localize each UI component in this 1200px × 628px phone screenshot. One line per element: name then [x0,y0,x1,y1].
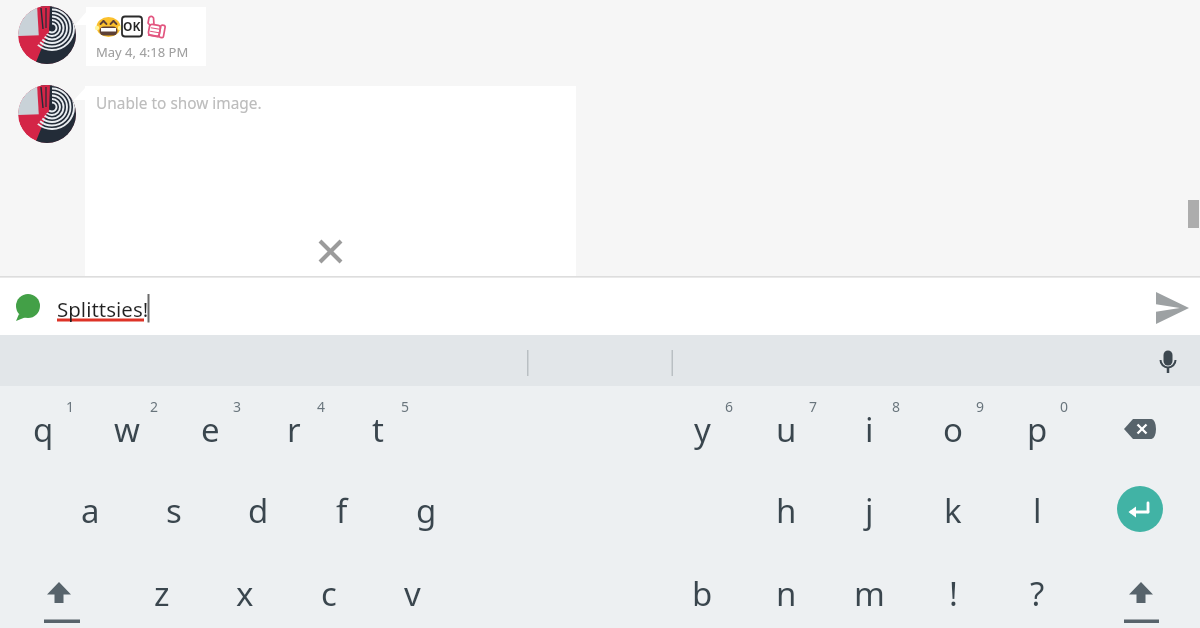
staticText: n [776,571,797,616]
button[interactable] [310,231,351,272]
staticText: b [692,571,713,616]
staticText: 7 [809,397,818,416]
button[interactable]: q [1,390,85,468]
button[interactable] [17,554,101,628]
staticText: ? [1030,571,1045,616]
staticText: y [694,407,711,452]
staticText: l [1033,488,1042,533]
button[interactable] [1146,282,1198,332]
button[interactable]: i [827,390,911,468]
button[interactable]: z [120,554,204,628]
button[interactable] [85,86,576,276]
staticText: f [336,488,348,533]
button[interactable]: ? [995,554,1079,628]
staticText: 3 [233,397,242,416]
staticText: m [854,571,885,616]
button[interactable] [1100,390,1184,468]
staticText: 0 [1060,397,1069,416]
staticText: ! [949,571,958,616]
button[interactable]: t [336,390,420,468]
staticText: v [404,571,421,616]
staticText: i [865,407,874,452]
staticText: May 4, 4:18 PM [96,43,189,61]
button[interactable]: v [370,554,454,628]
button[interactable]: l [995,471,1079,549]
staticText: w [114,407,140,452]
staticText: z [154,571,170,616]
button[interactable]: k [911,471,995,549]
staticText: 2 [150,397,159,416]
button[interactable]: u [744,390,828,468]
button[interactable]: h [744,471,828,549]
button[interactable]: g [384,471,468,549]
staticText: 4 [317,397,326,416]
staticText: g [416,488,437,533]
button[interactable]: j [827,471,911,549]
staticText: h [776,488,797,533]
button[interactable]: r [252,390,336,468]
staticText: d [248,488,269,533]
staticText: Unable to show image. [96,93,262,114]
button[interactable]: x [203,554,287,628]
staticText: t [372,407,384,452]
button[interactable] [1140,335,1196,386]
staticText: 6 [725,397,734,416]
staticText: e [201,407,220,452]
button[interactable]: w [85,390,169,468]
staticText: 1 [66,397,75,416]
staticText: u [776,407,797,452]
button[interactable] [0,278,56,335]
staticText: x [236,571,254,616]
staticText: q [33,407,54,452]
staticText: p [1027,407,1048,452]
button[interactable]: b [660,554,744,628]
staticText: k [944,488,962,533]
staticText: c [321,571,337,616]
button[interactable]: c [287,554,371,628]
staticText: a [81,488,100,533]
staticText: r [287,407,301,452]
button[interactable] [1099,554,1183,628]
staticText: s [166,488,182,533]
staticText: Splittsies! [57,295,149,323]
button[interactable]: y [660,390,744,468]
staticText: 8 [892,397,901,416]
button[interactable] [86,7,206,66]
button[interactable]: f [300,471,384,549]
button[interactable]: a [48,471,132,549]
button[interactable]: ! [911,554,995,628]
button[interactable]: o [911,390,995,468]
staticText: o [943,407,963,452]
staticText: 9 [976,397,985,416]
staticText: OK [123,18,141,34]
button[interactable]: p [995,390,1079,468]
button[interactable]: e [168,390,252,468]
button[interactable]: s [132,471,216,549]
button[interactable]: m [827,554,911,628]
button[interactable] [1100,471,1184,549]
button[interactable]: n [744,554,828,628]
staticText: j [865,488,874,533]
staticText: 5 [401,397,410,416]
button[interactable]: d [216,471,300,549]
